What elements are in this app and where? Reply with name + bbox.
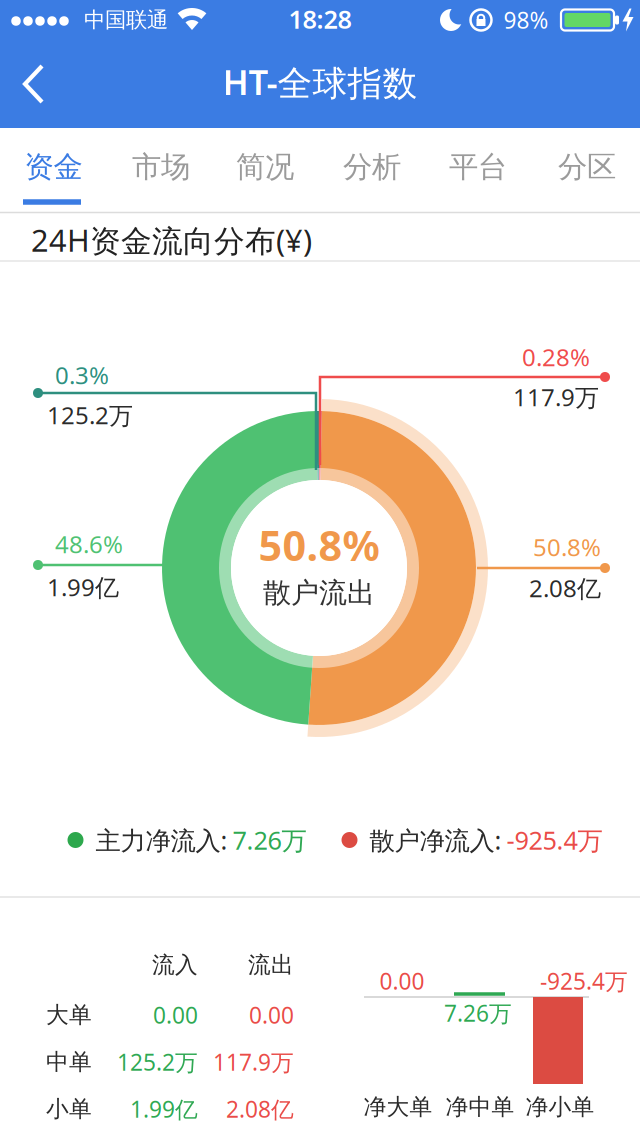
staticText: 流出 bbox=[248, 951, 294, 979]
staticText: 125.2万 bbox=[117, 1047, 198, 1077]
staticText: 散户净流入: bbox=[369, 823, 501, 857]
button[interactable]: 市场 bbox=[113, 136, 209, 198]
staticText: 流入 bbox=[152, 951, 198, 979]
staticText: 50.8% bbox=[533, 531, 601, 563]
staticText: 净大单 bbox=[363, 1093, 432, 1121]
button[interactable]: 分区 bbox=[539, 136, 635, 198]
staticText: 平台 bbox=[449, 149, 507, 185]
staticText: 0.00 bbox=[379, 966, 424, 996]
staticText: 市场 bbox=[132, 149, 190, 185]
staticText: 净小单 bbox=[525, 1093, 594, 1121]
staticText: 7.26万 bbox=[232, 823, 306, 857]
staticText: 小单 bbox=[46, 1095, 92, 1123]
staticText: 0.00 bbox=[153, 1000, 198, 1030]
staticText: 2.08亿 bbox=[226, 1094, 294, 1124]
button[interactable]: Back bbox=[9, 54, 63, 114]
staticText: 18:28 bbox=[288, 2, 351, 36]
button[interactable]: 平台 bbox=[430, 136, 526, 198]
staticText: 中单 bbox=[46, 1048, 92, 1076]
staticText: 7.26万 bbox=[444, 998, 512, 1028]
staticText: 1.99亿 bbox=[47, 571, 119, 603]
staticText: 简况 bbox=[236, 149, 294, 185]
button[interactable]: 资金 bbox=[8, 136, 98, 198]
staticText: 0.3% bbox=[55, 359, 109, 391]
staticText: 资金 bbox=[24, 149, 82, 185]
staticText: 0.28% bbox=[522, 341, 590, 373]
staticText: HT-全球指数 bbox=[222, 59, 417, 105]
staticText: 大单 bbox=[46, 1001, 92, 1029]
staticText: 1.99亿 bbox=[130, 1094, 198, 1124]
staticText: 117.9万 bbox=[213, 1047, 294, 1077]
staticText: 分区 bbox=[558, 149, 616, 185]
staticText: 125.2万 bbox=[47, 399, 133, 431]
staticText: 98% bbox=[503, 5, 548, 35]
staticText: -925.4万 bbox=[506, 823, 602, 857]
staticText: 主力净流入: bbox=[95, 823, 227, 857]
staticText: 2.08亿 bbox=[529, 572, 601, 604]
staticText: 117.9万 bbox=[513, 381, 599, 413]
staticText: 中国联通 bbox=[84, 7, 168, 33]
staticText: 0.00 bbox=[249, 1000, 294, 1030]
staticText: 净中单 bbox=[445, 1093, 514, 1121]
staticText: -925.4万 bbox=[540, 966, 628, 996]
staticText: 50.8% bbox=[258, 518, 379, 572]
staticText: 24H资金流向分布(¥) bbox=[31, 220, 312, 260]
staticText: 48.6% bbox=[55, 528, 123, 560]
staticText: 分析 bbox=[343, 149, 401, 185]
button[interactable]: 简况 bbox=[217, 136, 313, 198]
staticText: 散户流出 bbox=[263, 576, 375, 610]
button[interactable]: 分析 bbox=[324, 136, 420, 198]
